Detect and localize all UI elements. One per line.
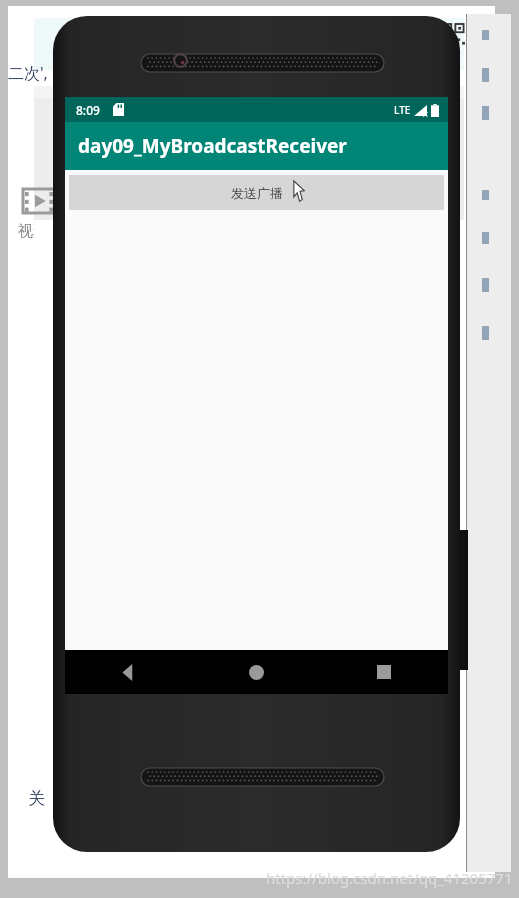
staticText: 8:09 xyxy=(76,102,100,118)
staticText: LTE xyxy=(394,103,411,117)
staticText: day09_MyBroadcastReceiver xyxy=(78,133,347,159)
staticText: 关 xyxy=(28,788,45,809)
staticText: 视频 xyxy=(18,222,48,241)
button[interactable]: Back xyxy=(65,650,192,694)
staticText: 发送广播 xyxy=(231,185,283,201)
button[interactable]: 发送广播 xyxy=(69,175,444,210)
staticText: 二次', xyxy=(8,62,48,84)
staticText: https://blog.csdn.net/qq_41205771 xyxy=(266,868,513,888)
button[interactable]: Home xyxy=(192,650,320,694)
button[interactable]: Recent apps xyxy=(320,650,448,694)
